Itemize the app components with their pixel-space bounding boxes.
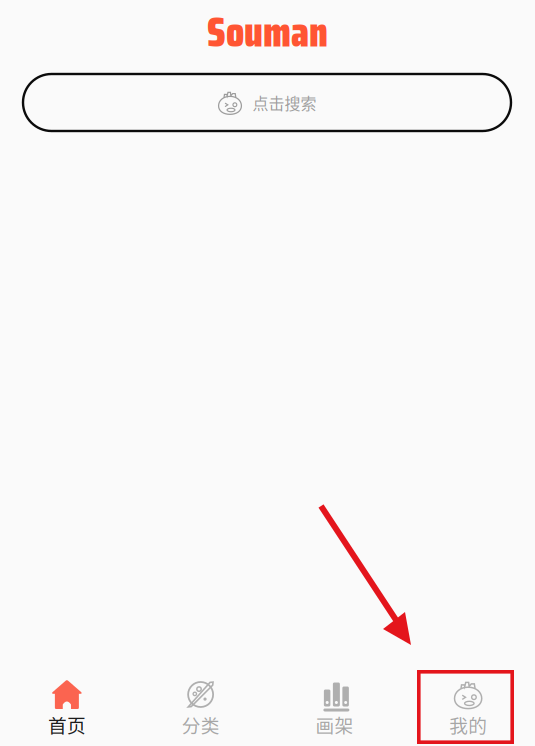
- staticText: 点击搜索: [253, 91, 317, 114]
- button[interactable]: 我的: [401, 671, 535, 746]
- staticText: 画架: [315, 711, 353, 738]
- button[interactable]: 首页: [0, 671, 134, 746]
- button[interactable]: 点击搜索: [23, 74, 511, 131]
- staticText: 我的: [449, 711, 487, 738]
- staticText: 分类: [182, 711, 220, 738]
- button[interactable]: 分类: [134, 671, 268, 746]
- button[interactable]: 画架: [267, 671, 401, 746]
- staticText: 首页: [48, 711, 86, 738]
- staticText: Souman: [207, 0, 328, 65]
